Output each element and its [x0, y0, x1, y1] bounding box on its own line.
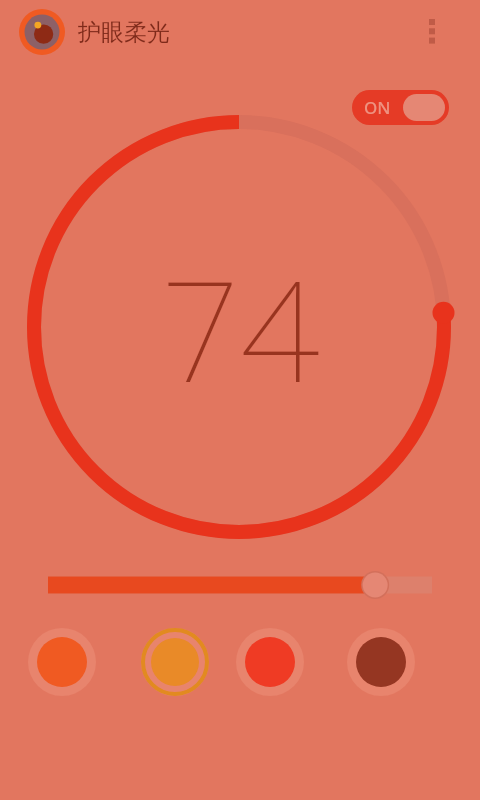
- button[interactable]: Colour 3: [234, 626, 306, 698]
- button[interactable]: Colour 4: [345, 626, 417, 698]
- button[interactable]: Colour 1: [26, 626, 98, 698]
- button[interactable]: Colour 2: [139, 626, 211, 698]
- button[interactable]: [0, 560, 480, 606]
- staticText: ON: [364, 96, 391, 119]
- button[interactable]: More options: [408, 8, 456, 56]
- button[interactable]: ON: [352, 90, 449, 125]
- staticText: 护眼柔光: [78, 18, 170, 47]
- staticText: 74: [160, 232, 320, 422]
